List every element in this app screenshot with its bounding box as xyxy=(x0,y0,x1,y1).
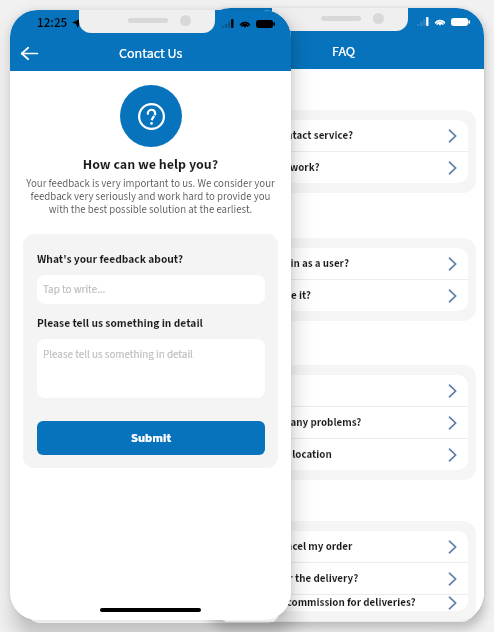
button[interactable]: What is it? xyxy=(219,375,468,406)
staticText: Please tell us something in detail xyxy=(43,347,193,363)
button[interactable]: How do I login as a user? xyxy=(219,248,468,279)
button[interactable]: What is the commission for deliveries? xyxy=(219,595,468,611)
staticText: What is it? xyxy=(231,383,449,399)
staticText: Contact Us xyxy=(119,44,183,64)
button[interactable]: Back xyxy=(19,42,42,65)
staticText: What's your feedback about? xyxy=(37,251,184,267)
staticText: Please tell us something in detail xyxy=(37,315,203,331)
staticText: What if I get any problems? xyxy=(231,415,449,431)
staticText: FAQ xyxy=(332,42,356,62)
button[interactable]: How do I set location xyxy=(219,439,468,470)
staticText: How long for the delivery? xyxy=(231,571,449,587)
staticText: How do I set location xyxy=(231,447,449,463)
button[interactable]: Tap to write... xyxy=(37,275,265,304)
staticText: How can I use it? xyxy=(231,288,449,304)
staticText: How does it work? xyxy=(231,160,449,176)
staticText: Tap to write... xyxy=(43,282,106,298)
staticText: Submit xyxy=(131,429,172,447)
staticText: How do I contact service? xyxy=(231,128,449,144)
staticText: How can we help you? xyxy=(10,155,291,175)
button[interactable]: Submit xyxy=(37,421,265,455)
button[interactable]: How does it work? xyxy=(219,152,468,183)
staticText: How do I cancel my order xyxy=(231,539,449,555)
staticText: 12:25 xyxy=(37,14,68,33)
button[interactable]: How can I use it? xyxy=(219,280,468,311)
button[interactable]: What if I get any problems? xyxy=(219,407,468,438)
button[interactable]: How do I cancel my order xyxy=(219,531,468,562)
button[interactable]: Please tell us something in detail xyxy=(37,339,265,398)
button[interactable]: How do I contact service? xyxy=(219,120,468,151)
staticText: How do I login as a user? xyxy=(231,256,449,272)
staticText: Your feedback is very important to us. W… xyxy=(18,176,283,217)
staticText: What is the commission for deliveries? xyxy=(231,595,449,611)
button[interactable]: How long for the delivery? xyxy=(219,563,468,594)
